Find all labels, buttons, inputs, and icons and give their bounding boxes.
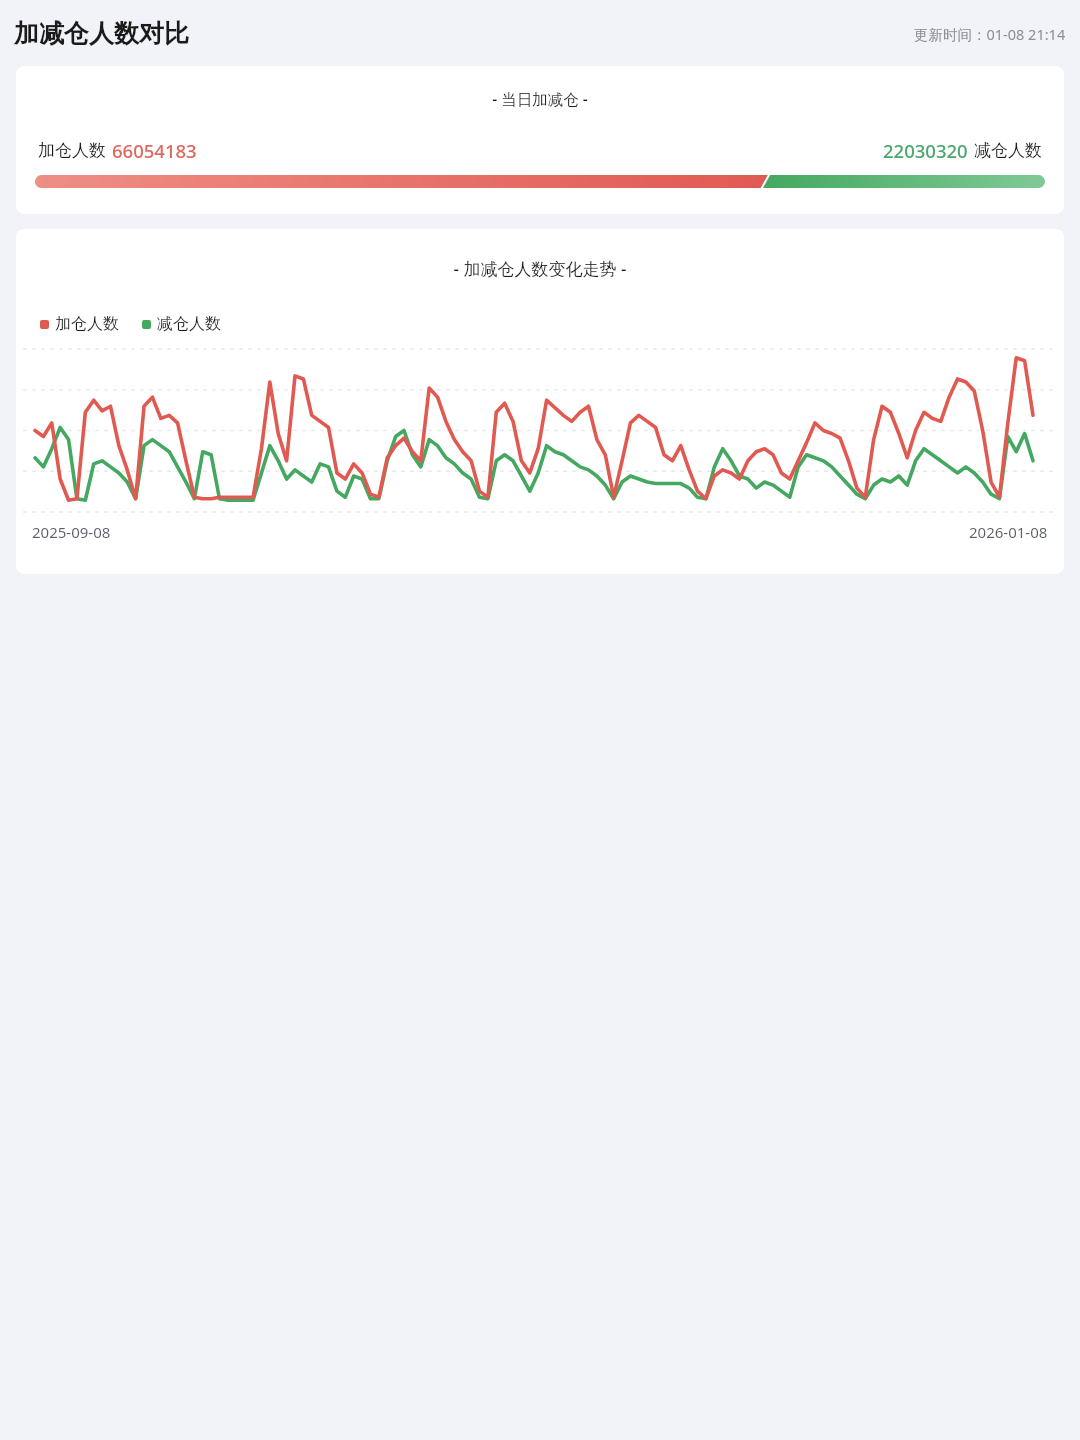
button[interactable]: - 当日加减仓 - <box>16 66 1064 214</box>
staticText: - 当日加减仓 - <box>492 88 588 109</box>
staticText: 加仓人数 <box>55 314 119 334</box>
button[interactable]: 加仓人数 <box>40 314 119 334</box>
staticText: 66054183 <box>112 138 197 163</box>
staticText: 加仓人数 <box>38 140 106 161</box>
button[interactable]: - 加减仓人数变化走势 - <box>16 229 1064 574</box>
staticText: 加减仓人数对比 <box>14 18 189 49</box>
other: 加减仓人数变化走势图 <box>23 349 1057 512</box>
button[interactable]: 减仓人数 <box>142 314 221 334</box>
staticText: - 加减仓人数变化走势 - <box>16 257 1064 280</box>
staticText: 减仓人数 <box>157 314 221 334</box>
staticText: 更新时间：01-08 21:14 <box>914 24 1066 44</box>
staticText: 减仓人数 <box>974 140 1042 161</box>
staticText: 22030320 <box>883 138 968 163</box>
staticText: 2025-09-08 <box>32 522 111 542</box>
staticText: 2026-01-08 <box>969 522 1048 542</box>
